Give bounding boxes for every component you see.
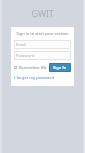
button[interactable]: I forgot my password	[14, 74, 55, 81]
staticText: Sign In	[53, 65, 67, 70]
button[interactable]: Sign In	[49, 63, 71, 72]
button[interactable]: Remember Me	[14, 64, 49, 71]
button[interactable]: Password	[14, 51, 71, 60]
staticText: Remember Me	[19, 65, 47, 70]
staticText: GWIT	[31, 7, 54, 19]
staticText: Password	[16, 53, 35, 58]
button[interactable]: Email	[14, 40, 71, 49]
staticText: Sign in to start your session	[14, 31, 71, 36]
staticText: Email	[16, 42, 27, 47]
